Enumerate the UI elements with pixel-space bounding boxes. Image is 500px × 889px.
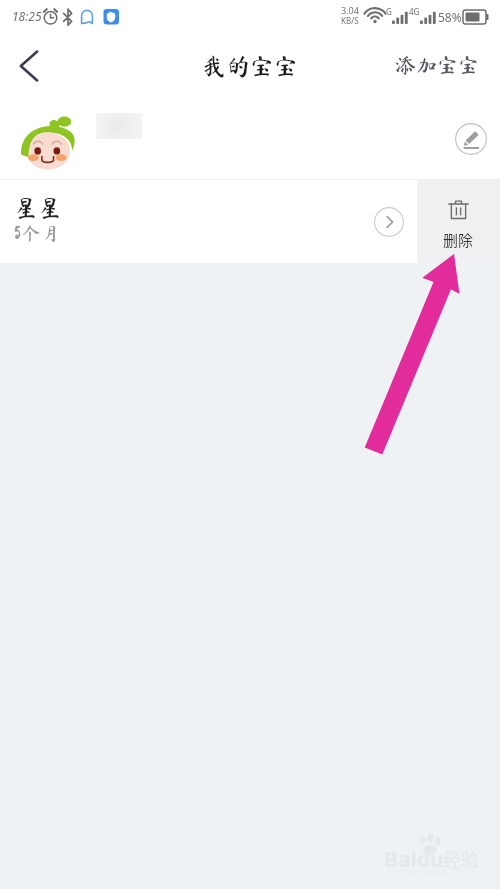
staticText: Baidu — [384, 845, 444, 874]
staticText: 经验 — [443, 846, 479, 872]
staticText: 4G — [409, 6, 420, 17]
staticText: 3.04 — [341, 4, 359, 16]
button[interactable]: 星星 — [0, 180, 417, 263]
staticText: 删除 — [443, 229, 474, 251]
staticText: 58% — [438, 9, 462, 25]
staticText: 我的宝宝 — [202, 54, 298, 78]
button[interactable]: Edit profile — [452, 120, 489, 157]
button[interactable]: 添加宝宝 — [379, 34, 500, 97]
staticText: 5个月 — [14, 224, 61, 242]
button[interactable]: Back — [0, 34, 58, 97]
staticText: jingyan.baidu.com — [386, 864, 473, 878]
staticText: G — [386, 6, 392, 17]
staticText: 星星 — [14, 196, 62, 220]
staticText: 添加宝宝 — [395, 55, 479, 76]
staticText: KB/S — [341, 15, 359, 26]
staticText: 18:25 — [12, 8, 42, 24]
button[interactable]: 删除 — [417, 180, 500, 263]
